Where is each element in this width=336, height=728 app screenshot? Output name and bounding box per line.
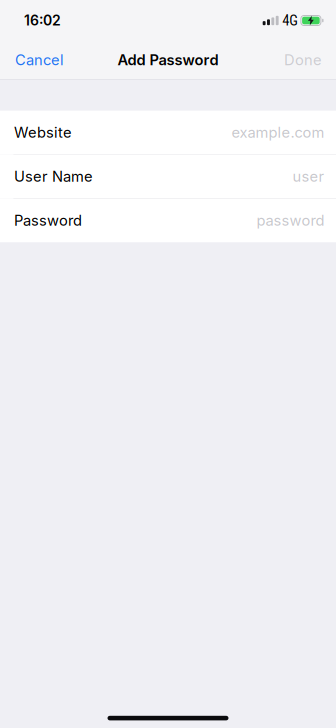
staticText: 16:02	[24, 12, 61, 29]
button[interactable]: Password	[0, 199, 336, 242]
staticText: 4G	[282, 12, 298, 29]
button[interactable]: Website	[0, 111, 336, 154]
staticText: User Name	[14, 168, 93, 185]
button[interactable]: Done	[270, 42, 336, 78]
button[interactable]: User Name	[0, 155, 336, 198]
staticText: Website	[14, 123, 72, 141]
staticText: password	[256, 212, 324, 229]
staticText: Password	[14, 212, 82, 229]
staticText: user	[292, 168, 324, 185]
staticText: Cancel	[15, 51, 64, 69]
staticText: Add Password	[117, 51, 218, 69]
button[interactable]: Cancel	[0, 42, 78, 78]
staticText: Done	[284, 51, 322, 69]
staticText: example.com	[231, 123, 324, 141]
